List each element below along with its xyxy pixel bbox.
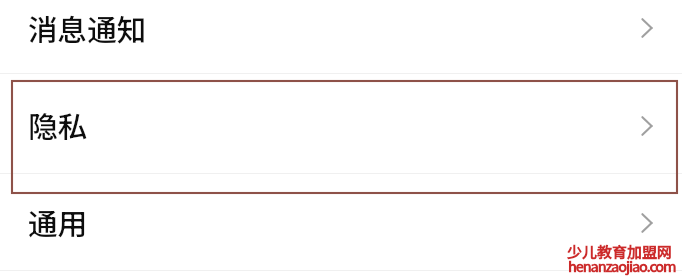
- other: 消息通知: [632, 13, 662, 43]
- other: 通用: [632, 208, 662, 238]
- other: 隐私: [632, 111, 662, 141]
- staticText: 隐私: [28, 104, 88, 147]
- staticText: 消息通知: [28, 7, 147, 50]
- staticText: 少儿教育加盟网: [567, 241, 673, 263]
- staticText: 通用: [28, 201, 88, 244]
- button[interactable]: 通用: [0, 174, 682, 271]
- button[interactable]: 隐私: [0, 74, 682, 173]
- button[interactable]: 消息通知: [0, 0, 682, 79]
- staticText: henanzaojiao.com: [568, 255, 676, 276]
